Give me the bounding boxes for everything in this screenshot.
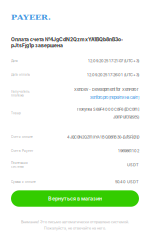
- staticText: Дата оплаты: [11, 73, 30, 76]
- staticText: Покупка S69F4000C8F6 ([DCom]: [77, 107, 139, 112]
- staticText: USDT: [127, 162, 139, 167]
- staticText: Товар: [11, 111, 21, 115]
- staticText: JoinPurchases): [113, 115, 139, 119]
- button[interactable]: Вернуться в магазин: [11, 190, 139, 207]
- staticText: Вернуться в магазин: [48, 195, 102, 202]
- staticText: 50.40 USDT: [115, 179, 139, 184]
- staticText: Пожалуйста, не отвечайте на него.: [44, 226, 106, 230]
- staticText: Счет к оплате: [11, 135, 33, 139]
- staticText: 12.09.2025 17:21:07 (UTC+3): [88, 58, 139, 63]
- staticText: 4JgCdN2QzmxYA1BQb8nB3o-pJtsFjg1p: [67, 134, 139, 139]
- staticText: 1969861102: [118, 148, 139, 153]
- staticText: Оплата счета №4JgCdN2QzmxYA1BQb8nB3o- pJ…: [11, 37, 123, 48]
- staticText: Внимание! Это письмо автоматически отпра…: [21, 220, 129, 224]
- staticText: Получатель платежа: [11, 90, 30, 97]
- staticText: XenDev - Development for XenForo r: [74, 87, 139, 92]
- staticText: 12.09.2025 17:26:01 (UTC+3): [87, 72, 139, 77]
- staticText: Счет в Payeer: [11, 149, 33, 153]
- staticText: Сумма к оплате: [11, 180, 36, 184]
- staticText: xenforo.pro [перейти на сайт]: [90, 95, 139, 100]
- staticText: Дата: [11, 59, 18, 63]
- staticText: Платежная система: [11, 161, 28, 168]
- staticText: PAYEER.: [11, 12, 51, 22]
